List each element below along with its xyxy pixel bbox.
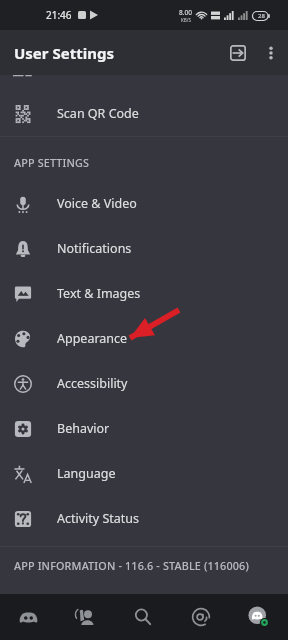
staticText: 8.00 bbox=[179, 8, 192, 17]
button[interactable]: Notifications bbox=[0, 226, 288, 271]
button[interactable]: Behavior bbox=[0, 406, 288, 451]
staticText: 21:46 bbox=[46, 8, 72, 22]
staticText: Appearance bbox=[57, 330, 128, 347]
staticText: Behavior bbox=[57, 420, 110, 437]
button[interactable]: Appearance bbox=[0, 316, 288, 361]
staticText: Accessibility bbox=[57, 375, 128, 392]
button[interactable]: Friends bbox=[57, 594, 114, 640]
staticText: APP SETTINGS bbox=[14, 155, 90, 170]
staticText: Voice & Video bbox=[57, 195, 137, 212]
staticText: APP INFORMATION - 116.6 - STABLE (116006… bbox=[14, 558, 249, 573]
button[interactable]: Voice & Video bbox=[0, 181, 288, 226]
button[interactable]: Home bbox=[0, 594, 57, 640]
button[interactable]: Text & Images bbox=[0, 271, 288, 316]
button[interactable]: Log out bbox=[222, 37, 254, 69]
staticText: Activity Status bbox=[57, 510, 140, 527]
button[interactable]: Accessibility bbox=[0, 361, 288, 406]
button[interactable]: Scan QR Code bbox=[0, 91, 288, 136]
staticText: User Settings bbox=[14, 43, 114, 63]
button[interactable]: Language bbox=[0, 451, 288, 496]
button[interactable]: Profile bbox=[230, 594, 288, 640]
staticText: Text & Images bbox=[57, 285, 141, 302]
button[interactable]: More options bbox=[254, 36, 288, 70]
button[interactable]: Search bbox=[114, 594, 172, 640]
staticText: Language bbox=[57, 465, 116, 482]
button[interactable]: Activity Status bbox=[0, 496, 288, 541]
staticText: Scan QR Code bbox=[57, 105, 139, 122]
staticText: Notifications bbox=[57, 240, 132, 257]
button[interactable] bbox=[0, 75, 288, 91]
button[interactable]: Mentions bbox=[172, 594, 230, 640]
staticText: 28 bbox=[258, 12, 265, 20]
staticText: KB/S bbox=[181, 17, 191, 23]
